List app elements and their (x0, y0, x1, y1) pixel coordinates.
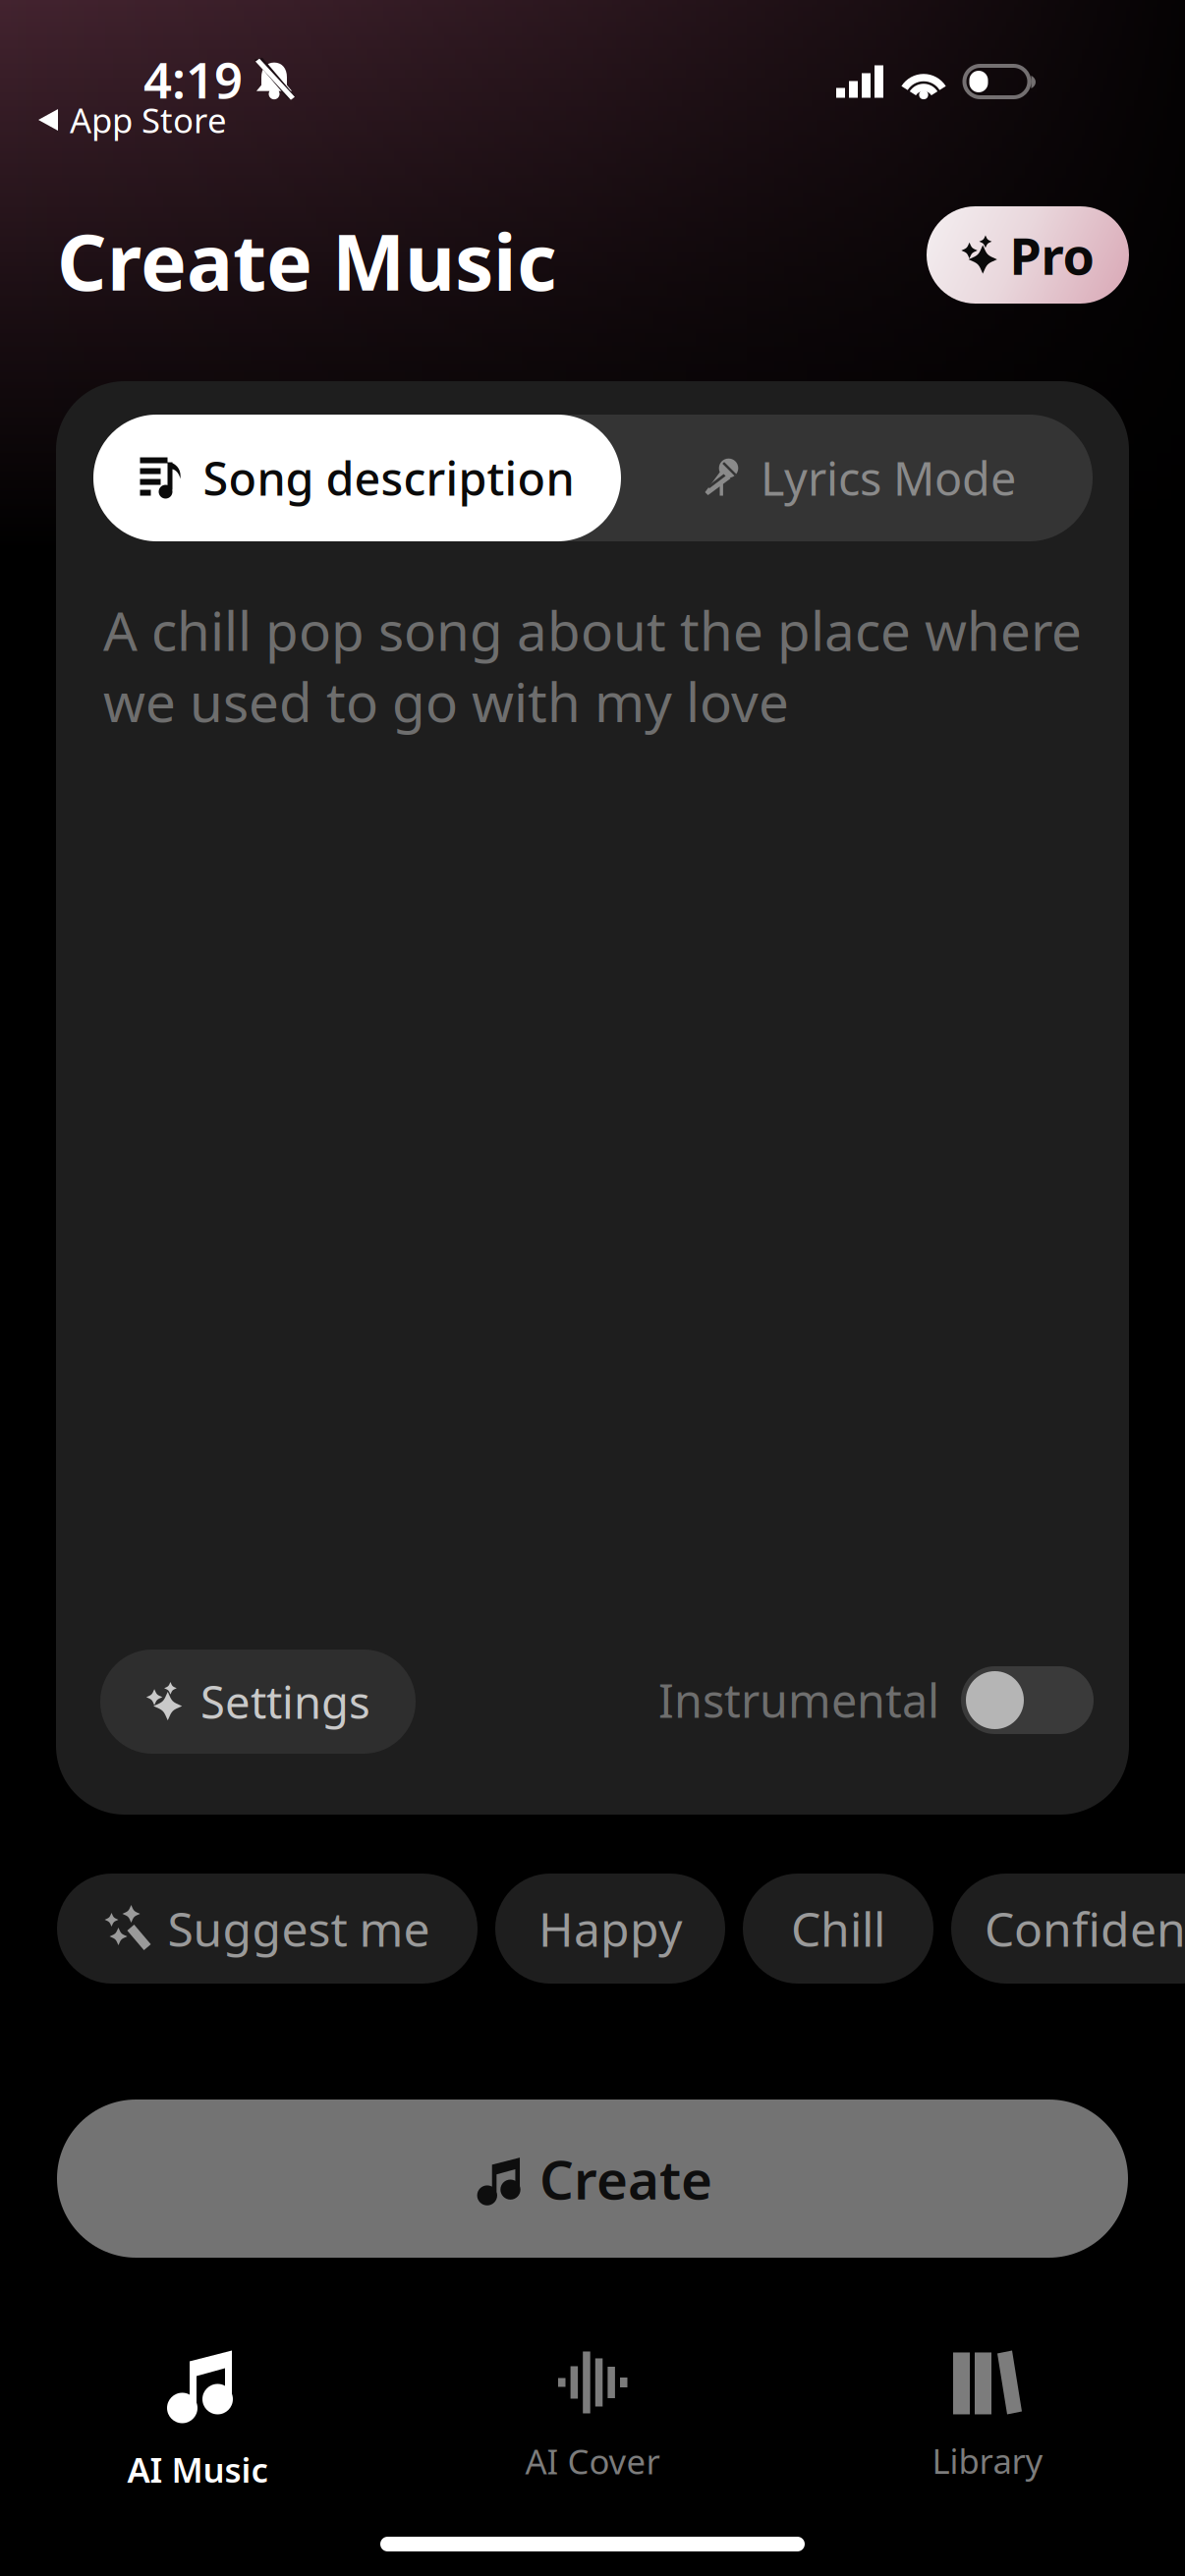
button[interactable]: Chill (743, 1874, 933, 1984)
button[interactable]: Suggest me (57, 1874, 478, 1984)
button[interactable]: Pro (927, 206, 1129, 304)
button[interactable]: Library (790, 2333, 1185, 2500)
button[interactable]: Settings (100, 1650, 416, 1754)
staticText: Settings (200, 1672, 370, 1731)
staticText: Confident (985, 1897, 1185, 1960)
staticText: Song description (203, 448, 574, 508)
button[interactable]: Confident (951, 1874, 1185, 1984)
button[interactable]: AI Music (0, 2333, 395, 2500)
staticText: Pro (1010, 221, 1095, 289)
staticText: Instrumental (658, 1670, 939, 1731)
staticText: Create Music (57, 209, 557, 312)
button[interactable]: Song description (93, 415, 621, 541)
staticText: App Store (70, 97, 227, 142)
button[interactable]: Create (57, 2100, 1128, 2258)
staticText: AI Cover (525, 2438, 660, 2484)
button[interactable]: AI Cover (395, 2333, 790, 2500)
button[interactable]: Happy (495, 1874, 725, 1984)
staticText: Library (932, 2438, 1043, 2483)
staticText: Lyrics Mode (761, 448, 1016, 508)
staticText: Happy (538, 1897, 682, 1960)
staticText: Create (539, 2143, 712, 2214)
button[interactable]: Lyrics Mode (621, 415, 1093, 541)
staticText: Chill (791, 1897, 885, 1960)
staticText: Suggest me (168, 1897, 430, 1960)
staticText: 4:19 (143, 46, 243, 112)
staticText: A chill pop song about the place where w… (103, 594, 1082, 737)
staticText: AI Music (127, 2447, 268, 2492)
